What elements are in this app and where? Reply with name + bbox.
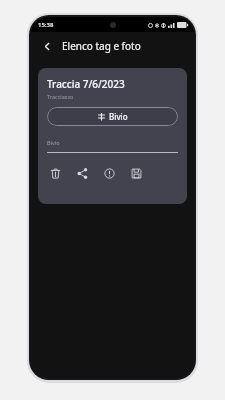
button[interactable]: Traccia 7/6/2023 [38,68,187,204]
button[interactable]: Bivio [47,139,178,153]
button[interactable]: Back [37,36,57,56]
staticText: Bivio [47,139,60,146]
staticText: Elenco tag e foto [62,39,141,53]
staticText: Traccia 7/6/2023 [47,77,125,91]
button[interactable]: Share [74,165,90,181]
staticText: Tracciasso [47,93,74,100]
button[interactable]: Save [128,165,144,181]
button[interactable]: Delete [47,165,63,181]
staticText: Bivio [109,111,128,122]
button[interactable]: Bivio [47,107,178,126]
button[interactable]: Info [101,165,117,181]
staticText: 15:38 [38,21,54,29]
